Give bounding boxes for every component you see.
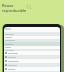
button[interactable] bbox=[4, 33, 60, 36]
button[interactable] bbox=[4, 67, 60, 71]
button[interactable] bbox=[4, 39, 60, 42]
staticText: reproducible bbox=[2, 8, 27, 13]
button[interactable] bbox=[4, 36, 60, 39]
button[interactable] bbox=[4, 42, 60, 46]
staticText: Reuse bbox=[2, 3, 14, 8]
button[interactable] bbox=[4, 51, 60, 55]
button[interactable] bbox=[4, 63, 60, 67]
button[interactable] bbox=[4, 55, 60, 59]
button[interactable] bbox=[4, 59, 60, 63]
button[interactable]: Search bbox=[26, 4, 32, 10]
button[interactable] bbox=[4, 46, 60, 49]
button[interactable] bbox=[4, 49, 60, 51]
